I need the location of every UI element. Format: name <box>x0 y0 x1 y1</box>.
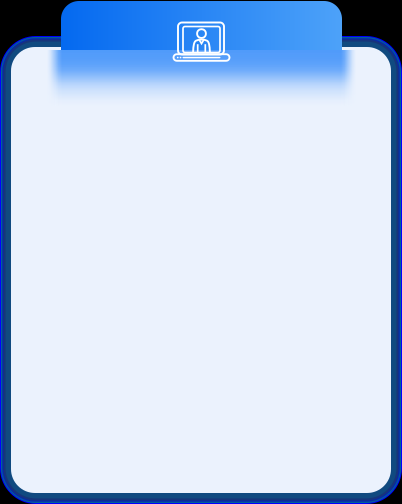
button[interactable]: Video session <box>61 1 342 61</box>
